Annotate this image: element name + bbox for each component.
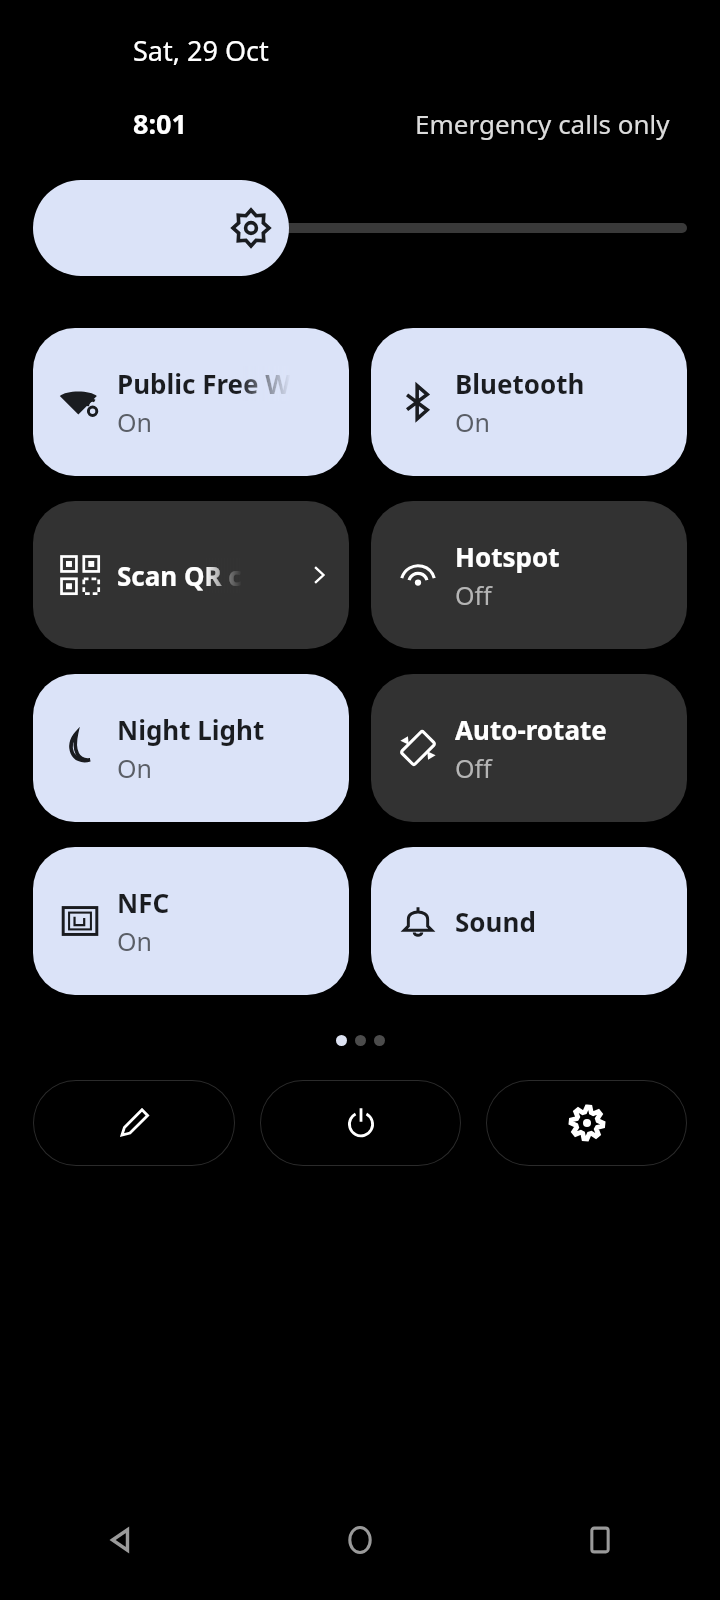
staticText: Bluetooth bbox=[455, 366, 585, 401]
staticText: Sound bbox=[455, 904, 536, 939]
staticText: 8:01 bbox=[133, 105, 187, 142]
staticText: On bbox=[117, 405, 152, 439]
button[interactable]: Night Light bbox=[33, 674, 349, 822]
staticText: Off bbox=[455, 578, 492, 612]
button[interactable]: Edit bbox=[33, 1080, 235, 1166]
staticText: Auto-rotate bbox=[455, 712, 607, 747]
button[interactable]: Back bbox=[0, 1480, 240, 1600]
button[interactable]: Brightness bbox=[33, 180, 687, 276]
button[interactable]: Power bbox=[260, 1080, 461, 1166]
staticText: Sat, 29 Oct bbox=[133, 32, 269, 69]
staticText: On bbox=[117, 751, 152, 785]
staticText: On bbox=[117, 924, 152, 958]
staticText: Scan QR c bbox=[117, 558, 242, 593]
button[interactable]: Sound bbox=[371, 847, 687, 995]
button[interactable]: Scan QR code bbox=[33, 501, 349, 649]
button[interactable]: Hotspot bbox=[371, 501, 687, 649]
staticText: NFC bbox=[117, 885, 170, 920]
staticText: Emergency calls only bbox=[415, 106, 670, 141]
button[interactable]: NFC bbox=[33, 847, 349, 995]
button[interactable]: Wi-Fi bbox=[33, 328, 349, 476]
button[interactable]: Settings bbox=[486, 1080, 687, 1166]
button[interactable]: Recents bbox=[480, 1480, 720, 1600]
staticText: On bbox=[455, 405, 490, 439]
staticText: Public Free W bbox=[117, 366, 291, 401]
button[interactable]: Home bbox=[240, 1480, 480, 1600]
button[interactable]: Auto-rotate bbox=[371, 674, 687, 822]
button[interactable]: Bluetooth bbox=[371, 328, 687, 476]
staticText: Off bbox=[455, 751, 492, 785]
staticText: Night Light bbox=[117, 712, 265, 747]
staticText: Hotspot bbox=[455, 539, 560, 574]
